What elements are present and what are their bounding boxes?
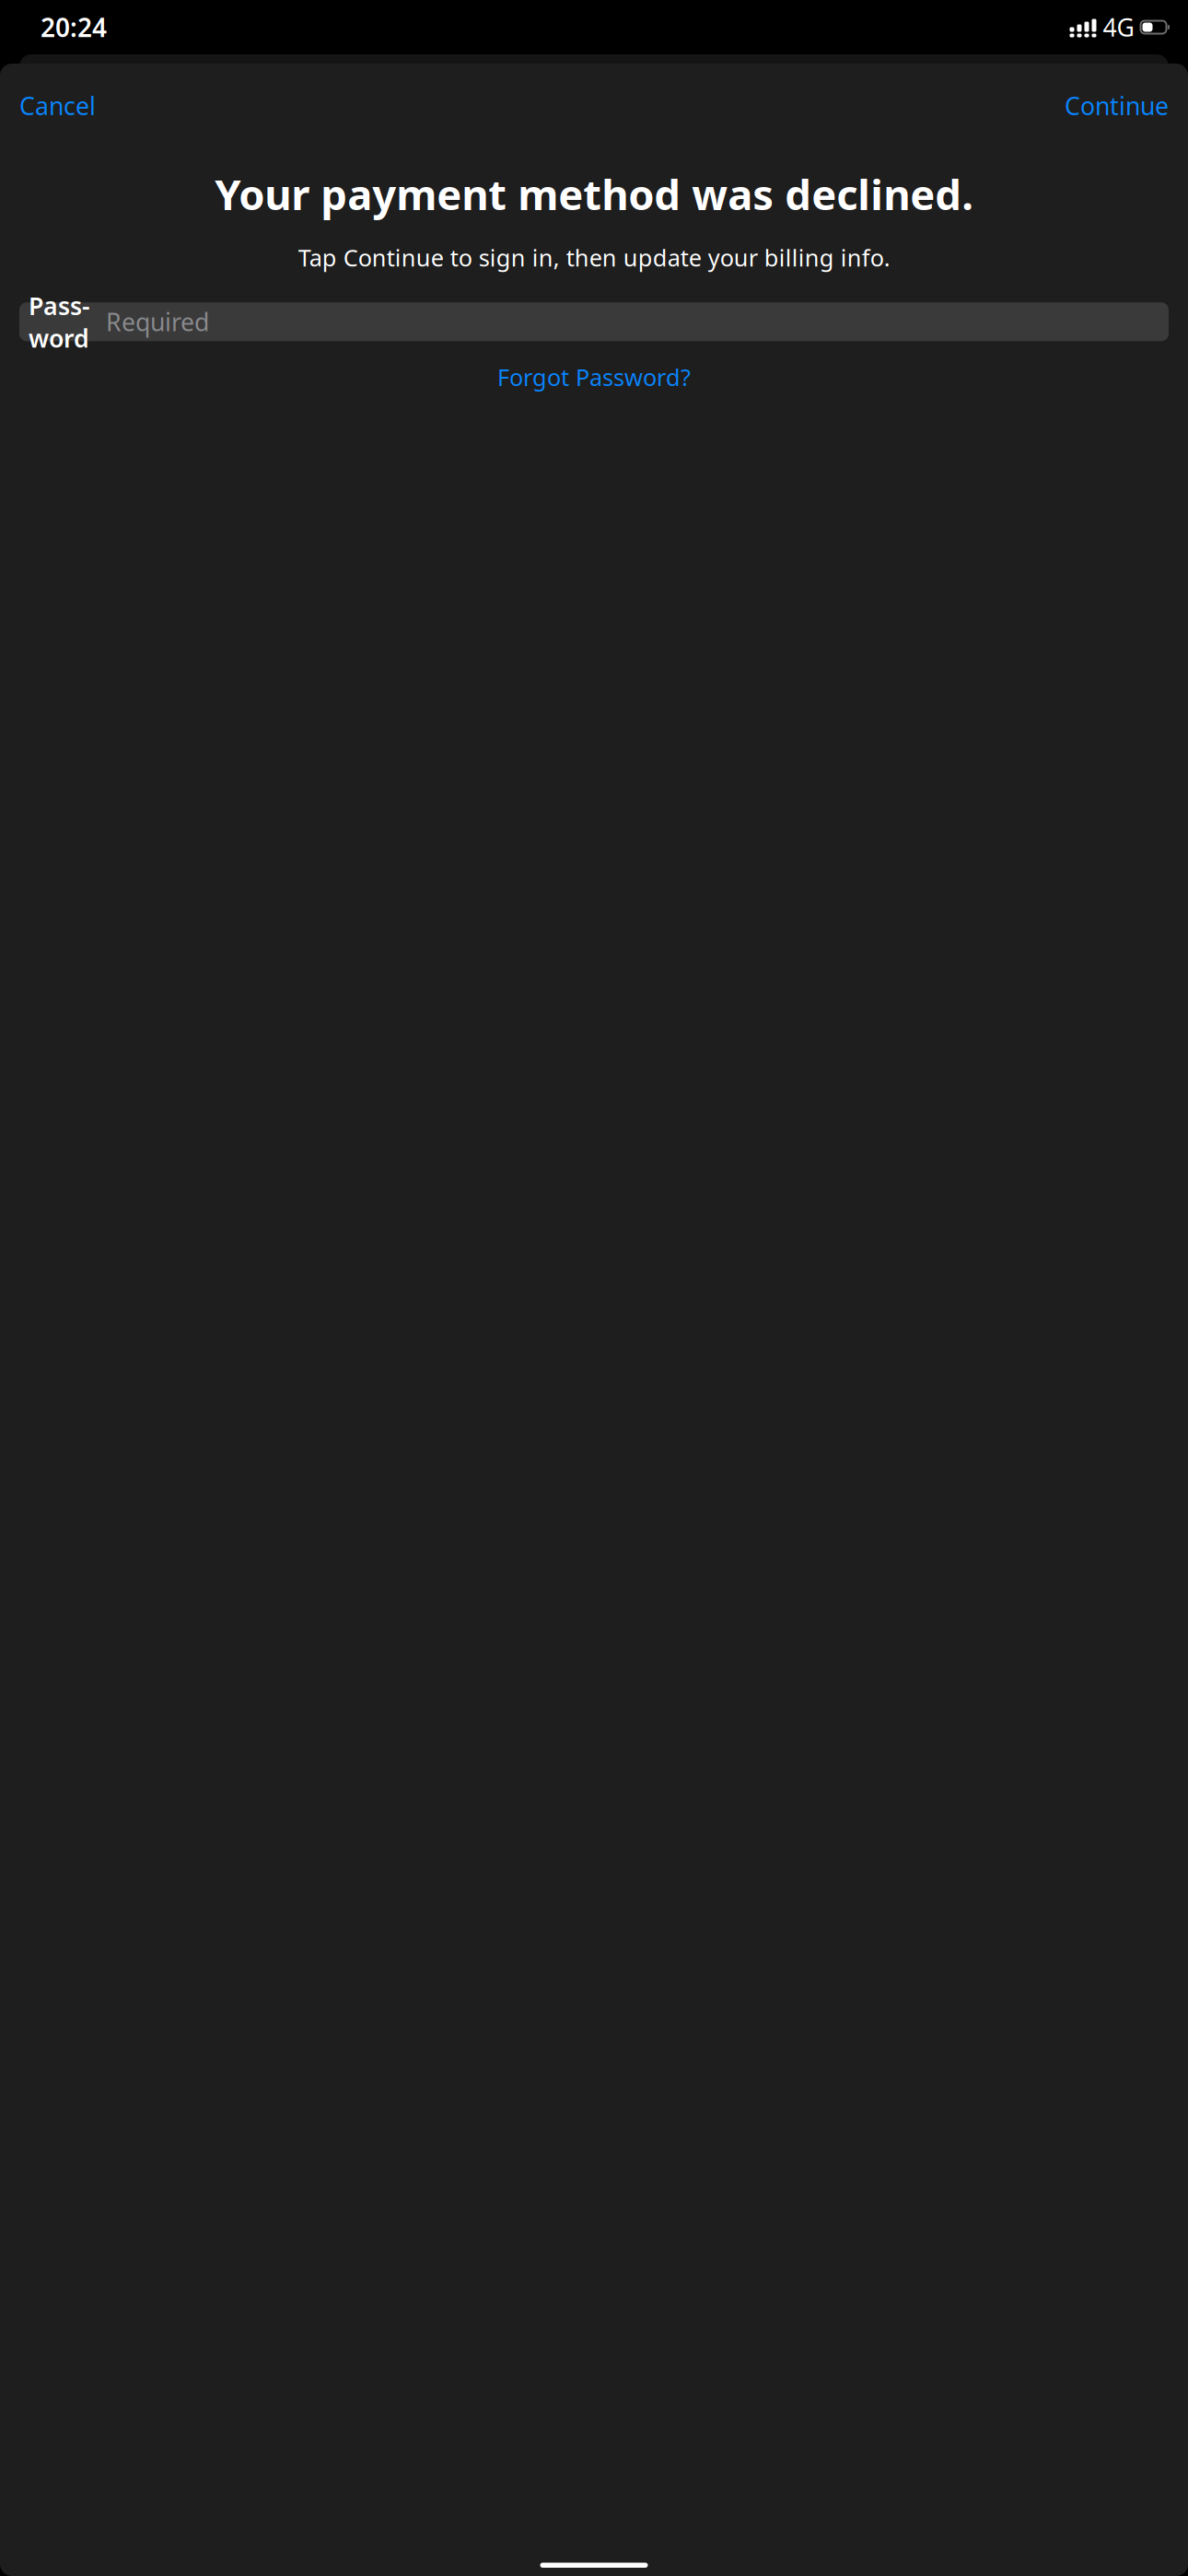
staticText: Continue <box>1065 89 1169 122</box>
staticText: 4G <box>1103 11 1134 43</box>
staticText: Required <box>106 305 209 338</box>
button[interactable]: Cancel <box>16 79 99 132</box>
staticText: Your payment method was declined. <box>215 166 973 222</box>
button[interactable]: Continue <box>1061 79 1172 132</box>
staticText: 20:24 <box>41 10 107 44</box>
button[interactable]: Password <box>19 302 1169 341</box>
button[interactable]: Forgot Password? <box>486 354 702 400</box>
staticText: Forgot Password? <box>497 361 691 392</box>
staticText: Tap Continue to sign in, then update you… <box>298 242 890 273</box>
staticText: Password <box>29 289 90 354</box>
staticText: Cancel <box>19 89 96 122</box>
